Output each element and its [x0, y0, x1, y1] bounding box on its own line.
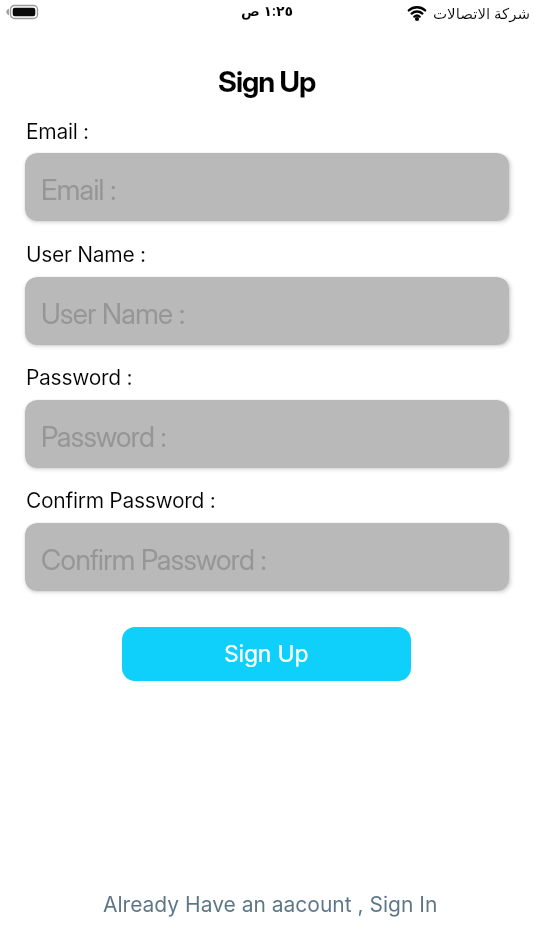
button[interactable]: Password : [25, 400, 509, 468]
staticText: Password : [41, 420, 167, 454]
button[interactable]: Confirm Password : [25, 523, 509, 591]
button[interactable]: Email : [25, 153, 509, 221]
staticText: Password : [26, 365, 133, 390]
staticText: Confirm Password : [26, 488, 216, 513]
button[interactable]: User Name : [25, 277, 509, 345]
staticText: User Name : [41, 297, 185, 331]
staticText: Confirm Password : [41, 543, 267, 577]
button[interactable]: Sign Up [122, 627, 411, 681]
staticText: Sign Up [224, 640, 309, 668]
button[interactable]: Already Have an aacount , Sign In [103, 892, 438, 917]
staticText: User Name : [26, 242, 146, 267]
staticText: ١:٢٥ ص [241, 1, 293, 20]
staticText: Email : [26, 119, 89, 144]
staticText: Email : [41, 173, 116, 207]
staticText: Sign Up [218, 64, 316, 99]
staticText: شركة الاتصالات [433, 3, 531, 23]
